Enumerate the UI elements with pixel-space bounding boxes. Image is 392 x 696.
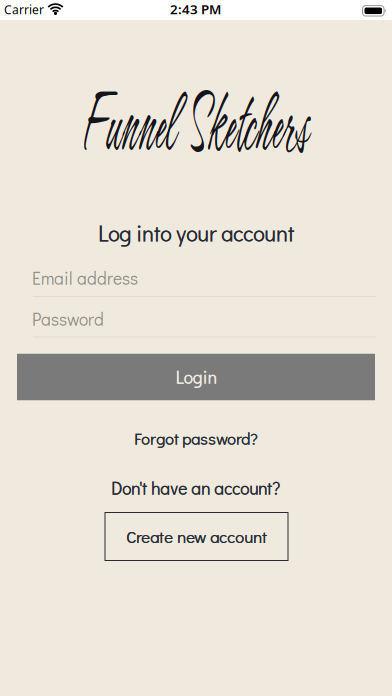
staticText: Funnel Sketchers [81,91,308,156]
staticText: Email address [32,267,138,289]
staticText: Login [176,366,217,388]
staticText: Carrier [4,1,44,17]
staticText: Forgot password? [134,428,257,449]
staticText: Forgot password? [134,428,257,449]
staticText: Login [175,366,216,388]
staticText: Log into your account [98,219,294,247]
button[interactable]: Login [17,354,375,400]
staticText: Create new account [126,526,267,547]
button[interactable]: Create new account [105,512,288,560]
staticText: Don't have an account? [111,477,280,499]
staticText: Don't have an account? [111,477,280,499]
staticText: Log into your account [98,219,294,247]
staticText: 2:43 PM [170,0,221,18]
staticText: Create new account [126,526,267,547]
staticText: Password [32,308,104,330]
button[interactable]: Forgot password? [134,428,257,449]
